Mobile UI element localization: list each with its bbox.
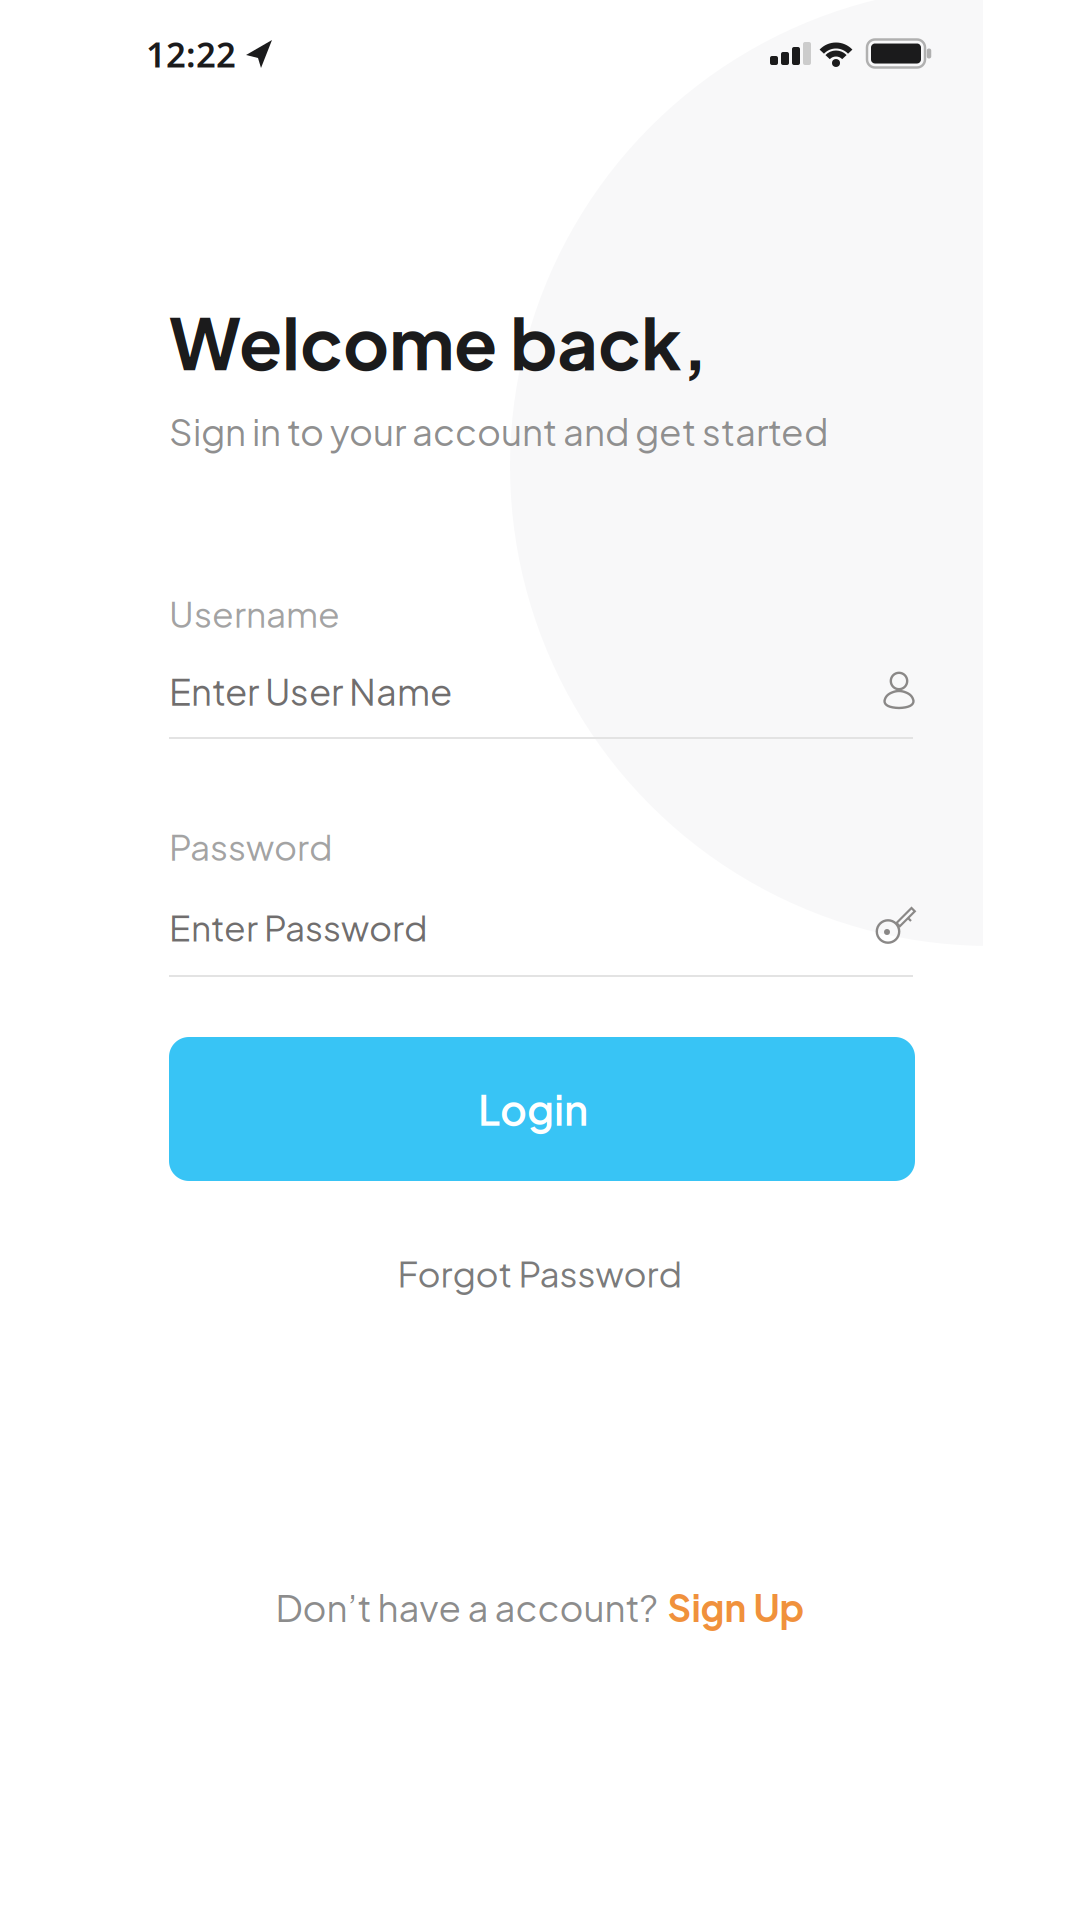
staticText: Sign in to your account and get started: [169, 408, 828, 454]
button[interactable]: Sign Up: [667, 1584, 804, 1630]
staticText: Forgot Password: [397, 1251, 682, 1295]
staticText: Welcome back,: [169, 297, 707, 386]
staticText: Sign Up: [667, 1584, 804, 1630]
button[interactable]: Forgot Password: [397, 1251, 682, 1295]
staticText: Don’t have a account?: [275, 1584, 657, 1630]
staticText: Enter User Name: [169, 668, 452, 714]
staticText: Enter Password: [169, 905, 428, 949]
button[interactable]: Enter User Name: [169, 659, 915, 723]
staticText: Password: [169, 824, 333, 868]
staticText: Login: [478, 1083, 588, 1135]
staticText: Username: [169, 591, 340, 635]
button[interactable]: Enter Password: [169, 895, 915, 959]
button[interactable]: Login: [169, 1037, 915, 1181]
staticText: 12:22: [146, 31, 236, 77]
